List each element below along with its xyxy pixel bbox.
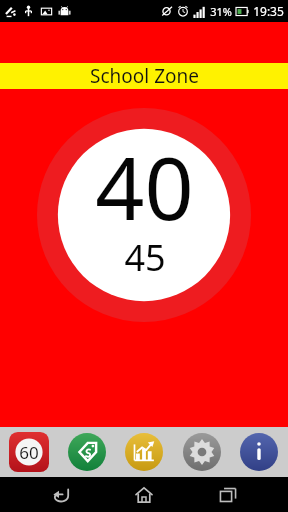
staticText: 45 xyxy=(124,233,166,282)
button[interactable]: Recent apps xyxy=(205,477,251,512)
button[interactable]: Speed tag xyxy=(64,429,110,475)
button[interactable]: Settings xyxy=(179,429,225,475)
button[interactable]: Back xyxy=(38,477,84,512)
staticText: School Zone xyxy=(90,63,199,89)
staticText: 31% xyxy=(210,4,232,19)
staticText: 60 xyxy=(19,441,39,464)
button[interactable]: Info xyxy=(236,429,282,475)
button[interactable]: 40 xyxy=(37,108,251,322)
button[interactable]: Statistics xyxy=(121,429,167,475)
button[interactable]: Speed limit 60 xyxy=(6,429,52,475)
button[interactable]: Home xyxy=(121,477,167,512)
staticText: 19:35 xyxy=(253,3,284,19)
staticText: 40 xyxy=(95,128,194,245)
